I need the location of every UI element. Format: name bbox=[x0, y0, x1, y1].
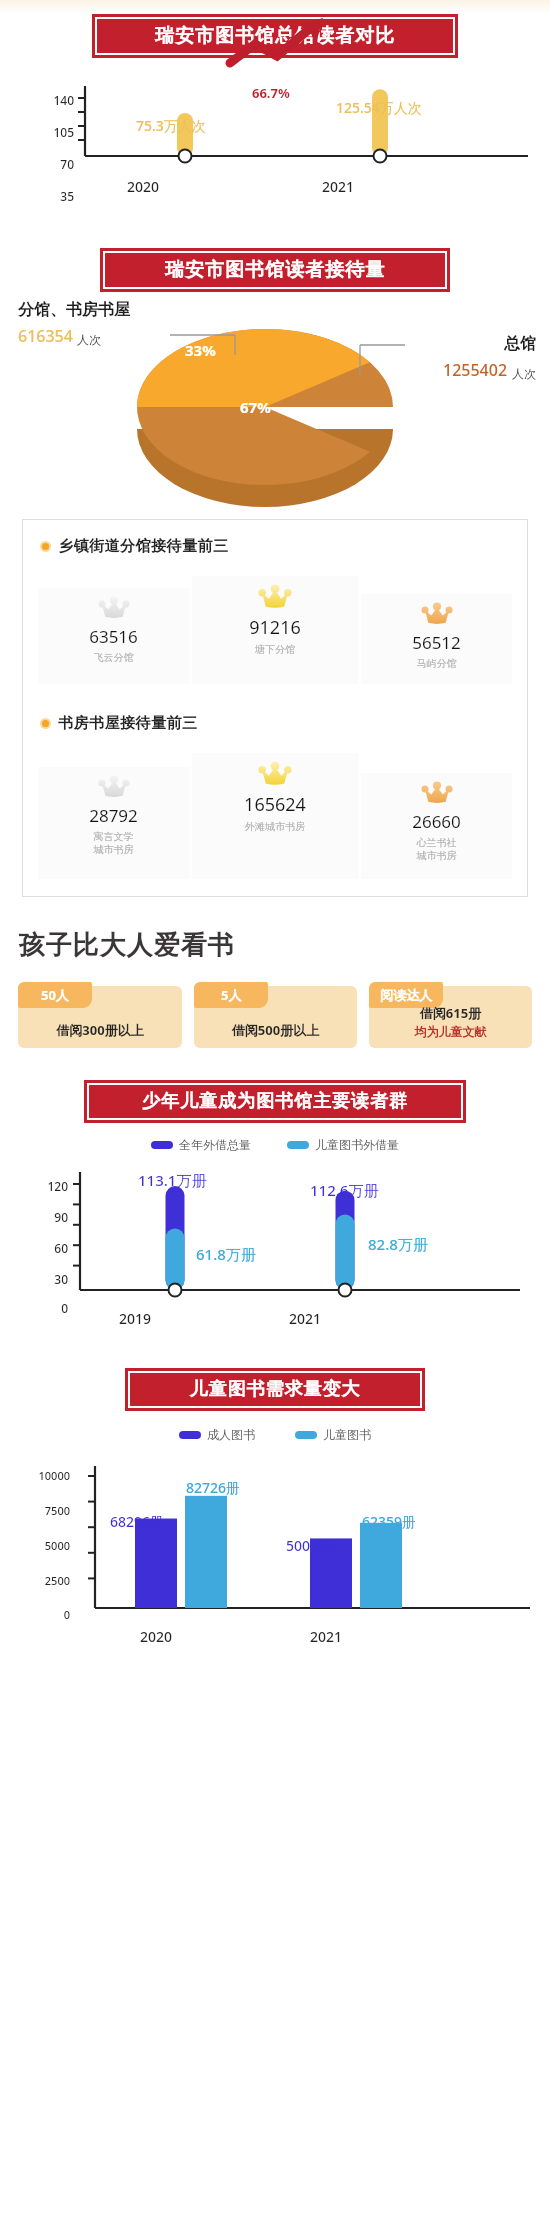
staticText: 2020 bbox=[98, 177, 188, 196]
staticText: 心兰书社 城市书房 bbox=[364, 836, 509, 862]
staticText: 50人 bbox=[41, 986, 69, 1004]
staticText: 阅读达人 bbox=[380, 987, 432, 1003]
staticText: 外滩城市书房 bbox=[195, 820, 355, 833]
staticText: 借阅615册 bbox=[369, 1004, 532, 1022]
staticText: 616354 bbox=[18, 325, 73, 347]
staticText: 7500 bbox=[12, 1503, 70, 1518]
staticText: 62359册 bbox=[362, 1512, 417, 1531]
staticText: 90 bbox=[22, 1209, 68, 1225]
staticText: 孩子比大人爱看书 bbox=[18, 929, 234, 962]
staticText: 82726册 bbox=[186, 1478, 241, 1497]
staticText: 2020 bbox=[106, 1627, 206, 1646]
staticText: 书房书屋接待量前三 bbox=[58, 714, 198, 733]
button[interactable]: 少年儿童成为图书馆主要读者群 bbox=[87, 1083, 463, 1120]
button[interactable]: 28792 bbox=[41, 776, 186, 870]
button[interactable]: 26660 bbox=[364, 782, 509, 870]
staticText: 瑞安市图书馆读者接待量 bbox=[103, 258, 447, 282]
staticText: 2021 bbox=[276, 1627, 376, 1646]
staticText: 借阅500册以上 bbox=[194, 1021, 357, 1039]
button[interactable]: 91216 bbox=[195, 585, 355, 675]
staticText: 2021 bbox=[293, 177, 383, 196]
staticText: 10000 bbox=[12, 1468, 70, 1483]
button[interactable]: 阅读达人 bbox=[369, 982, 532, 1048]
staticText: 2021 bbox=[260, 1309, 350, 1328]
staticText: 165624 bbox=[195, 792, 355, 817]
staticText: 瑞安市图书馆总馆读者对比 bbox=[95, 24, 455, 48]
staticText: 分馆、书房书屋 bbox=[18, 300, 130, 320]
button[interactable]: 儿童图书需求量变大 bbox=[128, 1371, 422, 1408]
staticText: 26660 bbox=[364, 810, 509, 833]
staticText: 125.54万人次 bbox=[336, 98, 422, 117]
staticText: 112.6万册 bbox=[310, 1180, 379, 1200]
staticText: 儿童图书外借量 bbox=[315, 1137, 399, 1152]
staticText: 人次 bbox=[77, 332, 101, 347]
staticText: 马屿分馆 bbox=[364, 657, 509, 670]
staticText: 儿童图书 bbox=[323, 1427, 371, 1442]
button[interactable]: 5人 bbox=[194, 982, 357, 1048]
button[interactable]: 63516 bbox=[41, 597, 186, 675]
staticText: 成人图书 bbox=[207, 1427, 255, 1442]
staticText: 借阅300册以上 bbox=[18, 1021, 182, 1039]
button[interactable]: 165624 bbox=[195, 762, 355, 870]
button[interactable]: 瑞安市图书馆总馆读者对比 bbox=[95, 17, 455, 55]
staticText: 28792 bbox=[41, 804, 186, 827]
staticText: 乡镇街道分馆接待量前三 bbox=[58, 537, 229, 556]
staticText: 50064册 bbox=[286, 1536, 341, 1555]
staticText: 0 bbox=[12, 1607, 70, 1622]
staticText: 飞云分馆 bbox=[41, 651, 186, 664]
staticText: 全年外借总量 bbox=[179, 1137, 251, 1152]
staticText: 塘下分馆 bbox=[195, 643, 355, 656]
button[interactable]: 乡镇街道分馆接待量前三 bbox=[40, 537, 528, 556]
staticText: 60 bbox=[22, 1240, 68, 1256]
button[interactable]: 瑞安市图书馆读者接待量 bbox=[103, 251, 447, 289]
button[interactable]: 50人 bbox=[18, 982, 182, 1048]
staticText: 均为儿童文献 bbox=[369, 1024, 532, 1039]
staticText: 82.8万册 bbox=[368, 1234, 428, 1254]
staticText: 75.3万人次 bbox=[136, 116, 206, 135]
staticText: 105 bbox=[30, 124, 74, 140]
staticText: 140 bbox=[30, 92, 74, 108]
staticText: 30 bbox=[22, 1271, 68, 1287]
button[interactable]: 书房书屋接待量前三 bbox=[40, 714, 528, 733]
staticText: 1255402 bbox=[443, 359, 508, 381]
button[interactable]: 56512 bbox=[364, 603, 509, 675]
staticText: 总馆 bbox=[504, 334, 536, 354]
staticText: 少年儿童成为图书馆主要读者群 bbox=[87, 1090, 463, 1113]
staticText: 2500 bbox=[12, 1573, 70, 1588]
staticText: 寓言文学 城市书房 bbox=[41, 830, 186, 856]
staticText: 70 bbox=[30, 156, 74, 172]
staticText: 33% bbox=[185, 340, 216, 360]
staticText: 5000 bbox=[12, 1538, 70, 1553]
staticText: 91216 bbox=[195, 615, 355, 640]
staticText: 120 bbox=[22, 1178, 68, 1194]
staticText: 67% bbox=[240, 397, 271, 417]
staticText: 5人 bbox=[221, 986, 242, 1004]
staticText: 63516 bbox=[41, 625, 186, 648]
staticText: 113.1万册 bbox=[138, 1170, 207, 1190]
staticText: 0 bbox=[22, 1300, 68, 1316]
staticText: 2019 bbox=[90, 1309, 180, 1328]
staticText: 56512 bbox=[364, 631, 509, 654]
staticText: 35 bbox=[30, 188, 74, 204]
staticText: 68296册 bbox=[110, 1512, 165, 1531]
staticText: 人次 bbox=[512, 366, 536, 381]
staticText: 儿童图书需求量变大 bbox=[128, 1378, 422, 1401]
staticText: 66.7% bbox=[252, 84, 290, 102]
staticText: 61.8万册 bbox=[196, 1244, 256, 1264]
